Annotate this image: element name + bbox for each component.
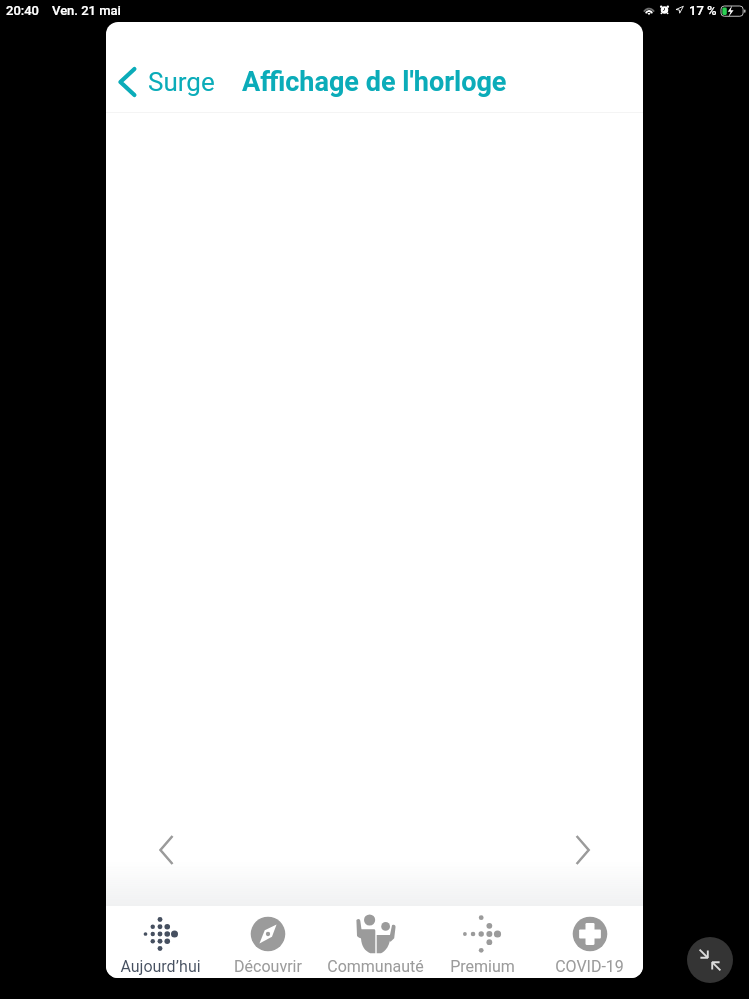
button[interactable]: Next	[563, 830, 603, 870]
button[interactable]: Previous	[146, 830, 186, 870]
button[interactable]: Aujourd’hui	[106, 906, 214, 978]
button[interactable]: Shrink window	[687, 937, 733, 983]
staticText: 17 %	[689, 3, 717, 18]
staticText: Affichage de l'horloge	[242, 66, 507, 98]
staticText: Découvrir	[234, 957, 302, 976]
button[interactable]: Back to Surge	[107, 59, 220, 105]
button[interactable]: Communauté	[322, 906, 429, 978]
staticText: Aujourd’hui	[120, 957, 201, 976]
staticText: Ven. 21 mai	[52, 3, 121, 18]
button[interactable]: Découvrir	[214, 906, 322, 978]
staticText: Surge	[148, 67, 215, 97]
button[interactable]: COVID-19	[536, 906, 643, 978]
staticText: 20:40	[6, 3, 40, 18]
staticText: Communauté	[327, 957, 424, 976]
staticText: Premium	[450, 957, 515, 976]
button[interactable]: Premium	[429, 906, 536, 978]
staticText: COVID-19	[555, 957, 624, 976]
